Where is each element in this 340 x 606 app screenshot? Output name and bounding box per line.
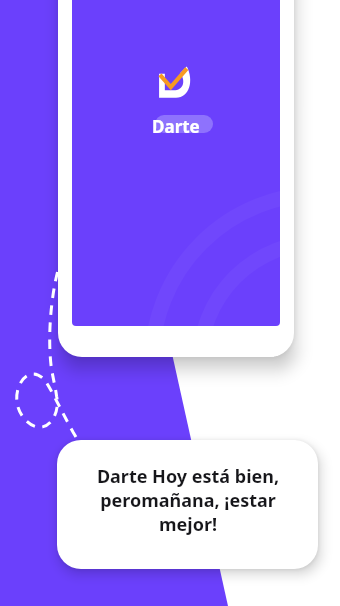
button[interactable]: Darte logo [158,65,194,101]
staticText: Darte [152,115,200,133]
button[interactable]: Darte [72,115,280,133]
staticText: Darte Hoy está bien, peromañana, ¡estar … [78,464,298,536]
button[interactable]: Darte Hoy está bien, peromañana, ¡estar … [57,440,318,569]
